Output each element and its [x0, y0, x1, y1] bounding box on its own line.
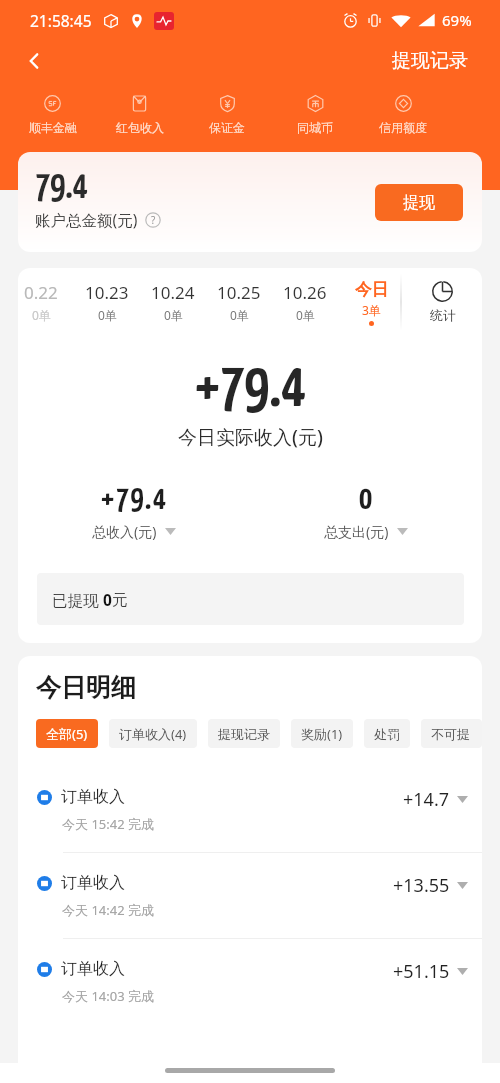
staticText: 订单收入 — [61, 873, 125, 893]
staticText: 0单 — [230, 307, 249, 323]
button[interactable]: 订单收入 — [18, 939, 482, 1024]
button[interactable]: 0 — [250, 485, 482, 541]
staticText: 总收入(元) — [92, 522, 157, 541]
staticText: 10.26 — [283, 281, 327, 304]
button[interactable]: 同城币 — [271, 93, 359, 137]
staticText: 提现记录 — [392, 49, 468, 73]
staticText: 顺丰金融 — [29, 120, 77, 135]
button[interactable]: 保证金 — [183, 93, 271, 137]
staticText: 0单 — [98, 307, 117, 323]
staticText: 0单 — [296, 307, 315, 323]
button[interactable]: 顺丰金融 — [9, 93, 96, 137]
staticText: ? — [151, 213, 156, 227]
button[interactable]: 订单收入 — [18, 767, 482, 852]
staticText: 0单 — [32, 307, 51, 323]
button[interactable]: Back — [18, 45, 50, 77]
button[interactable]: 提现记录 — [208, 719, 280, 748]
staticText: 同城币 — [297, 120, 333, 135]
button[interactable]: 10.23 — [74, 281, 140, 323]
button[interactable]: 奖励(1) — [291, 719, 353, 748]
staticText: 信用额度 — [379, 120, 427, 135]
button[interactable]: 信用额度 — [359, 93, 447, 137]
button[interactable]: 10.24 — [140, 281, 206, 323]
staticText: 0单 — [164, 307, 183, 323]
staticText: 10.24 — [151, 281, 195, 304]
button[interactable]: 不可提现 — [421, 719, 482, 748]
staticText: +79.4 — [101, 485, 168, 516]
staticText: 今日 — [355, 279, 388, 300]
staticText: 总支出(元) — [324, 522, 389, 541]
staticText: 今日明细 — [36, 672, 136, 703]
button[interactable]: +79.4 — [18, 485, 250, 541]
staticText: 统计 — [430, 307, 456, 323]
button[interactable]: 红包收入 — [96, 93, 183, 137]
staticText: 今日实际收入(元) — [178, 424, 323, 450]
button[interactable]: 订单收入 — [18, 853, 482, 938]
staticText: +14.7 — [403, 787, 450, 812]
staticText: 0 — [359, 485, 374, 516]
staticText: 今天 14:42 完成 — [62, 901, 154, 919]
staticText: 不可提现 — [431, 726, 472, 742]
button[interactable]: 提现 — [375, 184, 463, 221]
staticText: 订单收入 — [61, 787, 125, 807]
staticText: 今天 15:42 完成 — [62, 815, 154, 833]
staticText: 订单收入(4) — [119, 725, 187, 743]
staticText: 处罚 — [374, 726, 400, 742]
button[interactable]: 全部(5) — [36, 719, 98, 748]
button[interactable]: 统计 — [403, 281, 482, 323]
button[interactable]: 已提现 — [37, 573, 464, 625]
staticText: 0 — [103, 589, 112, 610]
staticText: 0.22 — [24, 281, 58, 304]
button[interactable]: 订单收入(4) — [109, 719, 197, 748]
staticText: 提现记录 — [218, 726, 270, 742]
staticText: 保证金 — [209, 120, 245, 135]
staticText: 已提现 — [52, 589, 103, 610]
staticText: 全部(5) — [46, 725, 88, 743]
staticText: 3单 — [362, 302, 381, 318]
staticText: 奖励(1) — [301, 725, 343, 743]
staticText: +51.15 — [393, 959, 450, 984]
staticText: 10.23 — [85, 281, 129, 304]
button[interactable]: 0.22 — [18, 281, 74, 323]
staticText: +13.55 — [393, 873, 450, 898]
staticText: 订单收入 — [61, 959, 125, 979]
button[interactable]: 今日 — [338, 279, 404, 326]
staticText: 10.25 — [217, 281, 261, 304]
staticText: 红包收入 — [116, 120, 164, 135]
staticText: 今天 14:03 完成 — [62, 987, 154, 1005]
staticText: 账户总金额(元) — [35, 209, 138, 230]
staticText: 79.4 — [35, 170, 88, 206]
button[interactable]: 处罚 — [364, 719, 410, 748]
button[interactable]: 10.26 — [272, 281, 338, 323]
staticText: 69% — [442, 10, 472, 30]
button[interactable]: 10.25 — [206, 281, 272, 323]
staticText: +79.4 — [195, 360, 306, 418]
staticText: 元 — [112, 590, 128, 610]
staticText: 提现 — [403, 193, 435, 213]
staticText: 21:58:45 — [30, 10, 92, 31]
